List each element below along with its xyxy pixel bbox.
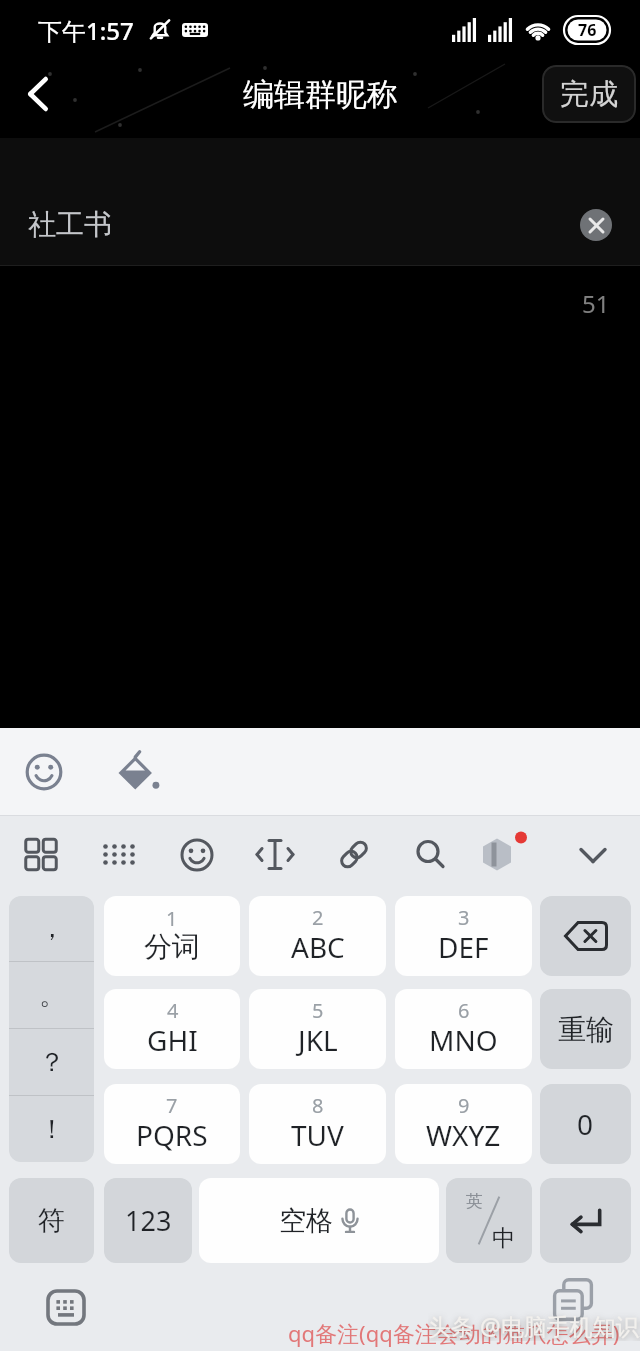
staticText: GHI xyxy=(147,1021,198,1059)
staticText: ABC xyxy=(291,928,345,966)
staticText: 编辑群昵称 xyxy=(243,75,398,114)
staticText: TUV xyxy=(291,1116,344,1154)
button[interactable]: 。 xyxy=(9,962,94,1028)
staticText: 中 xyxy=(492,1224,515,1253)
staticText: 4 xyxy=(167,997,179,1024)
button[interactable] xyxy=(548,1275,598,1325)
button[interactable] xyxy=(24,752,64,792)
button[interactable] xyxy=(580,209,612,241)
button[interactable]: 5 xyxy=(249,989,386,1069)
staticText: 社工书 xyxy=(28,207,112,242)
button[interactable]: 空格 xyxy=(199,1178,439,1263)
button[interactable] xyxy=(572,833,616,877)
staticText: 空格 xyxy=(279,1204,333,1238)
button[interactable] xyxy=(332,833,376,877)
staticText: WXYZ xyxy=(426,1116,501,1154)
button[interactable]: 6 xyxy=(395,989,532,1069)
button[interactable] xyxy=(540,896,631,976)
staticText: 3 xyxy=(458,904,470,931)
staticText: 英 xyxy=(466,1191,483,1212)
staticText: 8 xyxy=(312,1092,324,1119)
staticText: 5 xyxy=(312,997,324,1024)
staticText: 分词 xyxy=(144,929,200,964)
button[interactable] xyxy=(20,833,64,877)
button[interactable]: 1 xyxy=(104,896,240,976)
staticText: PQRS xyxy=(136,1116,208,1154)
staticText: DEF xyxy=(438,928,489,966)
button[interactable]: ？ xyxy=(9,1029,94,1095)
staticText: ， xyxy=(39,912,65,945)
button[interactable] xyxy=(16,72,60,116)
button[interactable]: 8 xyxy=(249,1084,386,1164)
button[interactable] xyxy=(540,1178,631,1263)
button[interactable] xyxy=(42,1283,90,1331)
button[interactable]: 完成 xyxy=(542,65,636,123)
staticText: MNO xyxy=(429,1021,498,1059)
staticText: 9 xyxy=(458,1092,470,1119)
staticText: 7 xyxy=(166,1092,178,1119)
staticText: 下午1:57 xyxy=(38,14,134,47)
staticText: ！ xyxy=(39,1113,65,1146)
button[interactable]: 123 xyxy=(104,1178,192,1263)
button[interactable]: ！ xyxy=(9,1096,94,1162)
button[interactable]: 9 xyxy=(395,1084,532,1164)
staticText: 76 xyxy=(578,19,597,41)
button[interactable]: ， xyxy=(9,896,94,961)
staticText: qq备注(qq备注会动的猫爪怎么弄) xyxy=(288,1318,620,1348)
button[interactable]: 7 xyxy=(104,1084,240,1164)
staticText: 6 xyxy=(458,997,470,1024)
staticText: 51 xyxy=(582,287,610,320)
staticText: 123 xyxy=(125,1202,172,1239)
staticText: 1 xyxy=(166,905,178,932)
staticText: JKL xyxy=(298,1021,338,1059)
button[interactable] xyxy=(254,833,298,877)
button[interactable] xyxy=(410,833,454,877)
staticText: 头条 @电脑手机知识大讲堂 xyxy=(428,1310,640,1341)
staticText: 符 xyxy=(38,1204,65,1238)
button[interactable]: 4 xyxy=(104,989,240,1069)
staticText: ？ xyxy=(39,1046,65,1079)
button[interactable]: 3 xyxy=(395,896,532,976)
button[interactable]: 英 xyxy=(446,1178,532,1263)
button[interactable]: 0 xyxy=(540,1084,631,1164)
staticText: 2 xyxy=(312,904,324,931)
button[interactable] xyxy=(114,749,160,795)
staticText: 完成 xyxy=(560,76,618,113)
button[interactable]: 2 xyxy=(249,896,386,976)
button[interactable] xyxy=(476,833,520,877)
button[interactable]: 重输 xyxy=(540,989,631,1069)
staticText: 。 xyxy=(39,979,65,1012)
button[interactable] xyxy=(98,833,142,877)
staticText: 重输 xyxy=(558,1012,614,1047)
staticText: 0 xyxy=(577,1105,594,1143)
button[interactable] xyxy=(176,833,220,877)
button[interactable]: 符 xyxy=(9,1178,94,1263)
